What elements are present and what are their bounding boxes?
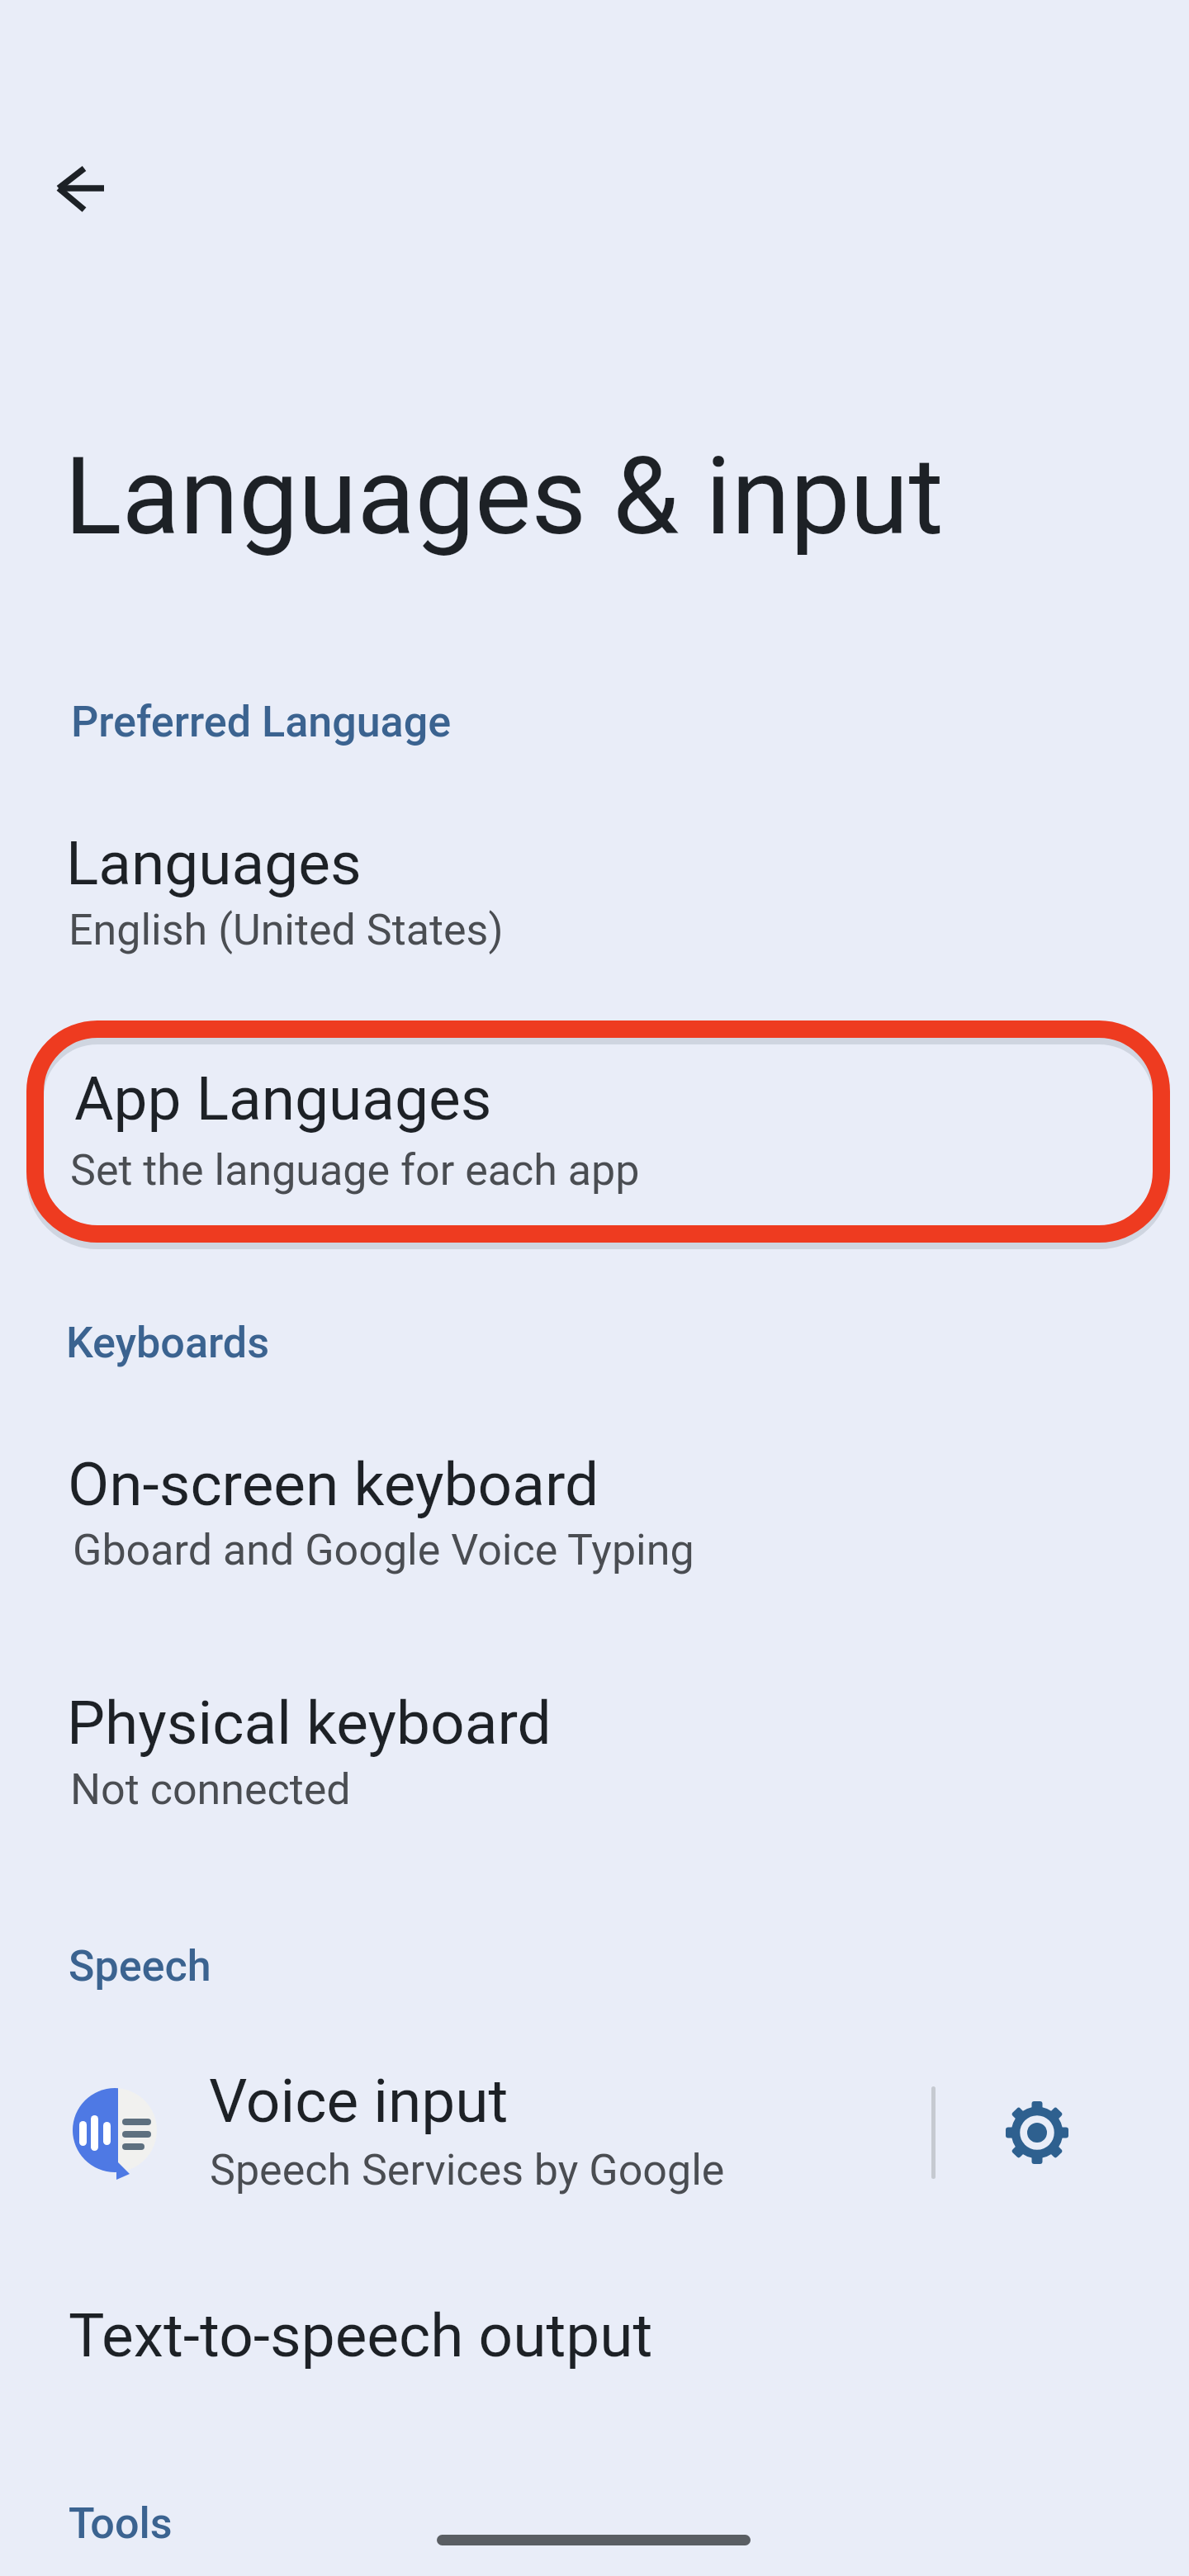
staticText: Physical keyboard xyxy=(67,1688,552,1759)
button[interactable]: On-screen keyboard xyxy=(0,1412,1189,1618)
staticText: Languages xyxy=(66,828,362,899)
button[interactable] xyxy=(33,139,124,238)
button[interactable]: Voice input xyxy=(0,2028,912,2234)
staticText: Gboard and Google Voice Typing xyxy=(73,1525,694,1575)
button[interactable]: Text-to-speech output xyxy=(0,2263,1189,2420)
staticText: Text-to-speech output xyxy=(69,2300,653,2371)
staticText: Set the language for each app xyxy=(70,1145,640,1196)
staticText: Keyboards xyxy=(66,1318,270,1368)
staticText: Tools xyxy=(69,2498,173,2549)
staticText: English (United States) xyxy=(69,905,504,955)
staticText: Not connected xyxy=(70,1764,351,1815)
button[interactable]: App Languages xyxy=(0,1020,1189,1243)
staticText: Voice input xyxy=(209,2066,509,2137)
staticText: Preferred Language xyxy=(71,697,452,747)
staticText: Speech Services by Google xyxy=(210,2145,725,2195)
staticText: App Languages xyxy=(74,1063,492,1134)
staticText: Languages & input xyxy=(64,434,944,559)
button[interactable]: Physical keyboard xyxy=(0,1651,1189,1858)
button[interactable] xyxy=(996,2091,1078,2174)
button[interactable]: Languages xyxy=(0,793,1189,999)
staticText: On-screen keyboard xyxy=(68,1449,599,1520)
staticText: Speech xyxy=(69,1941,211,1991)
